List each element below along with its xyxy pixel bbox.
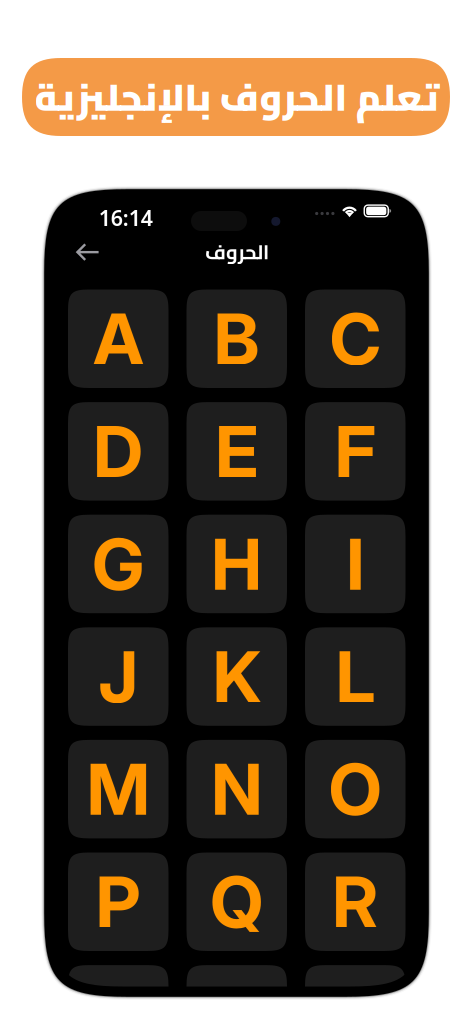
button[interactable]: I: [305, 515, 405, 613]
staticText: P: [96, 859, 141, 944]
staticText: تعلم الحروف بالإنجليزية: [34, 62, 438, 132]
button[interactable]: E: [186, 402, 287, 501]
staticText: L: [336, 634, 375, 719]
button[interactable]: Q: [186, 852, 287, 951]
button[interactable]: P: [68, 852, 168, 951]
button[interactable]: K: [186, 627, 287, 726]
staticText: الحروف: [204, 233, 268, 271]
staticText: N: [211, 746, 262, 832]
button[interactable]: L: [305, 627, 405, 726]
staticText: I: [346, 521, 364, 607]
button[interactable]: D: [68, 402, 168, 501]
staticText: D: [93, 409, 143, 494]
button[interactable]: S: [68, 965, 168, 1024]
button[interactable]: J: [68, 627, 168, 726]
button[interactable]: A: [68, 289, 168, 388]
button[interactable]: T: [186, 965, 287, 1024]
staticText: 16:14: [99, 203, 153, 232]
staticText: H: [211, 521, 262, 607]
button[interactable]: F: [305, 402, 405, 501]
staticText: M: [87, 746, 150, 832]
button[interactable]: Back: [67, 234, 109, 270]
staticText: C: [330, 296, 381, 381]
button[interactable]: R: [305, 852, 405, 951]
button[interactable]: C: [305, 289, 405, 388]
button[interactable]: G: [68, 515, 168, 613]
staticText: E: [215, 409, 258, 494]
staticText: A: [93, 296, 143, 381]
staticText: B: [214, 296, 260, 381]
staticText: F: [335, 409, 376, 494]
staticText: S: [95, 972, 141, 1024]
button[interactable]: H: [186, 515, 287, 613]
staticText: G: [92, 521, 144, 607]
button[interactable]: N: [186, 740, 287, 838]
staticText: U: [330, 972, 380, 1024]
staticText: Q: [210, 859, 263, 944]
staticText: T: [214, 972, 259, 1024]
button[interactable]: O: [305, 740, 405, 838]
button[interactable]: M: [68, 740, 168, 838]
button[interactable]: B: [186, 289, 287, 388]
staticText: K: [213, 634, 261, 719]
staticText: R: [332, 859, 378, 944]
button[interactable]: U: [305, 965, 405, 1024]
button[interactable]: تعلم الحروف بالإنجليزية: [22, 58, 450, 136]
staticText: J: [98, 634, 138, 719]
staticText: O: [329, 746, 382, 832]
